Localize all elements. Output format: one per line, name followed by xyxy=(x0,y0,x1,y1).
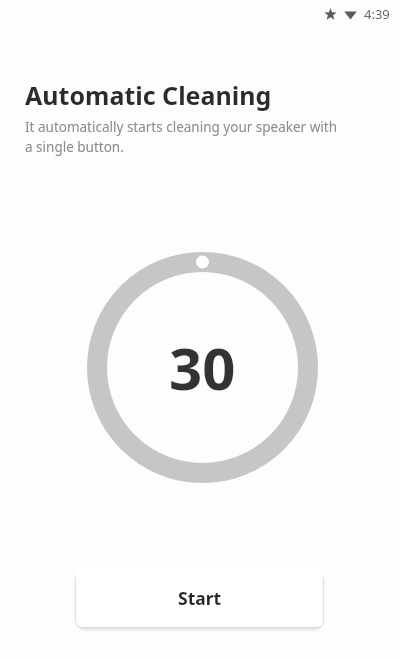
staticText: 30 xyxy=(169,328,236,407)
staticText: Start xyxy=(178,586,222,610)
staticText: Automatic Cleaning xyxy=(25,78,272,112)
other: Starred xyxy=(324,8,337,21)
other: Wi-Fi xyxy=(344,8,357,21)
staticText: 4:39 xyxy=(364,5,390,23)
staticText: It automatically starts cleaning your sp… xyxy=(25,118,345,156)
button[interactable]: Start xyxy=(76,568,323,627)
button[interactable]: 30 xyxy=(87,252,318,483)
